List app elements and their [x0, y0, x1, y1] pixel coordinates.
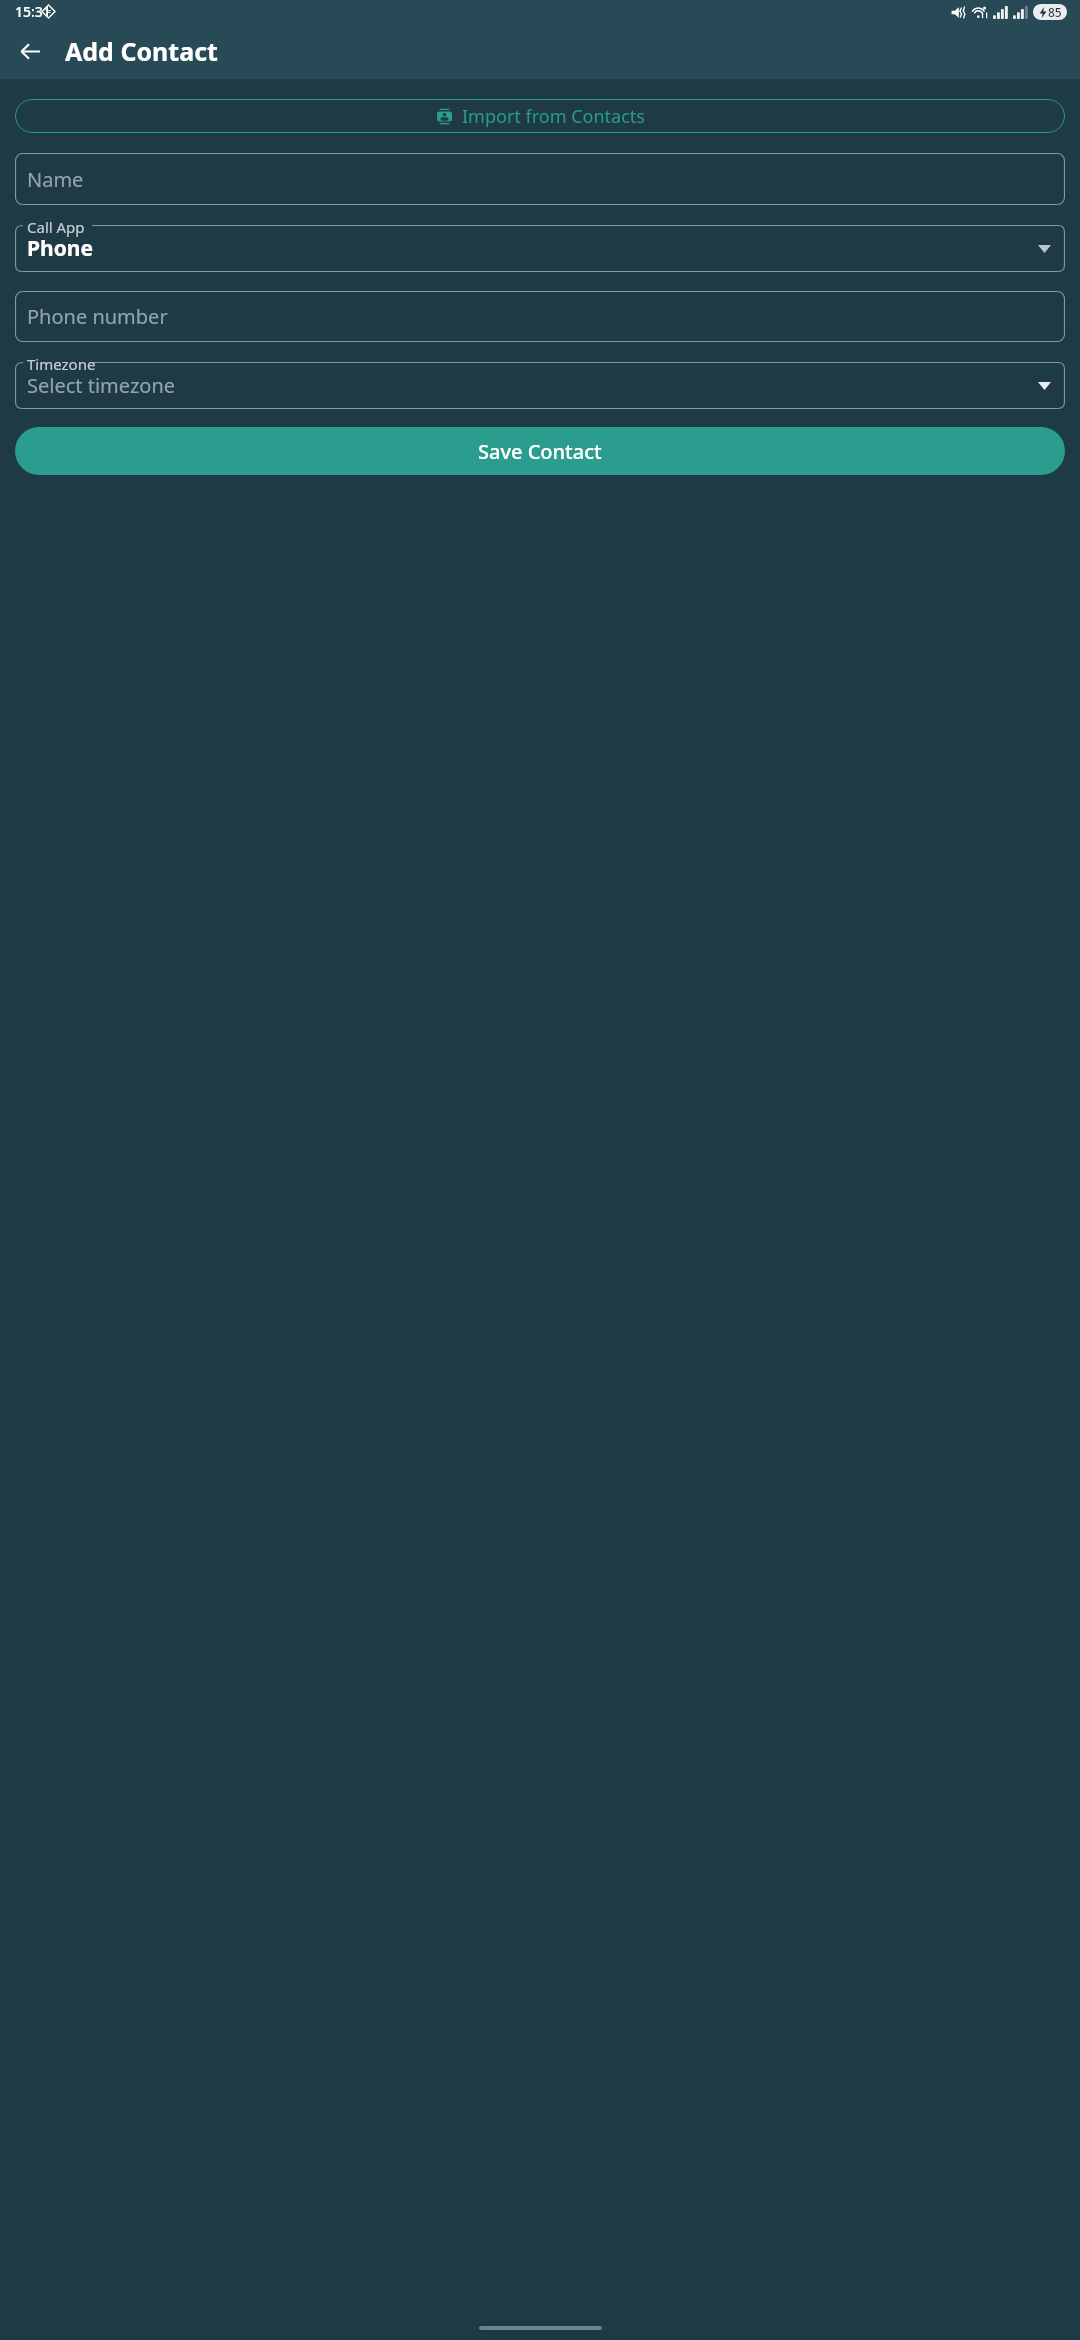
- staticText: Add Contact: [65, 34, 218, 68]
- button[interactable]: Phone number: [15, 291, 1065, 342]
- staticText: Phone number: [27, 303, 168, 330]
- staticText: Call App: [27, 217, 85, 237]
- button[interactable]: Save Contact: [15, 427, 1065, 475]
- staticText: Save Contact: [478, 438, 602, 465]
- staticText: 85: [1048, 4, 1062, 20]
- staticText: Select timezone: [27, 372, 176, 399]
- button[interactable]: Import from Contacts: [15, 99, 1065, 133]
- button[interactable]: Phone: [15, 217, 1065, 272]
- staticText: Name: [27, 166, 84, 193]
- button[interactable]: Name: [15, 153, 1065, 205]
- staticText: Timezone: [27, 354, 96, 374]
- staticText: Import from Contacts: [462, 104, 645, 129]
- staticText: 15:31: [15, 2, 51, 21]
- button[interactable]: Select timezone: [15, 354, 1065, 409]
- staticText: Phone: [27, 234, 94, 263]
- button[interactable]: Back: [6, 27, 54, 75]
